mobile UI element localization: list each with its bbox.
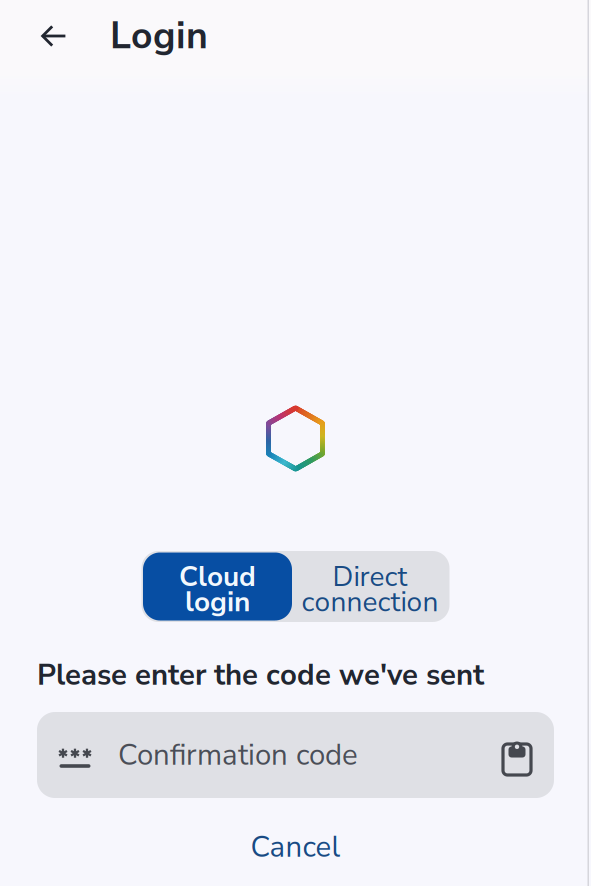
staticText: login [185,583,250,621]
staticText: Cloud [179,558,256,596]
button[interactable]: Cancel [224,819,366,875]
staticText: Cancel [250,827,340,867]
button[interactable]: Back [0,9,110,63]
staticText: Direct [332,558,407,596]
staticText: Login [110,10,208,61]
button[interactable]: Paste from clipboard [503,724,554,786]
staticText: connection [301,583,438,621]
staticText: Confirmation code [118,735,358,775]
button[interactable]: Direct [292,552,448,620]
button[interactable]: Login [110,0,218,73]
staticText: Please enter the code we've sent [37,655,484,695]
button[interactable]: Cloud [143,552,292,620]
